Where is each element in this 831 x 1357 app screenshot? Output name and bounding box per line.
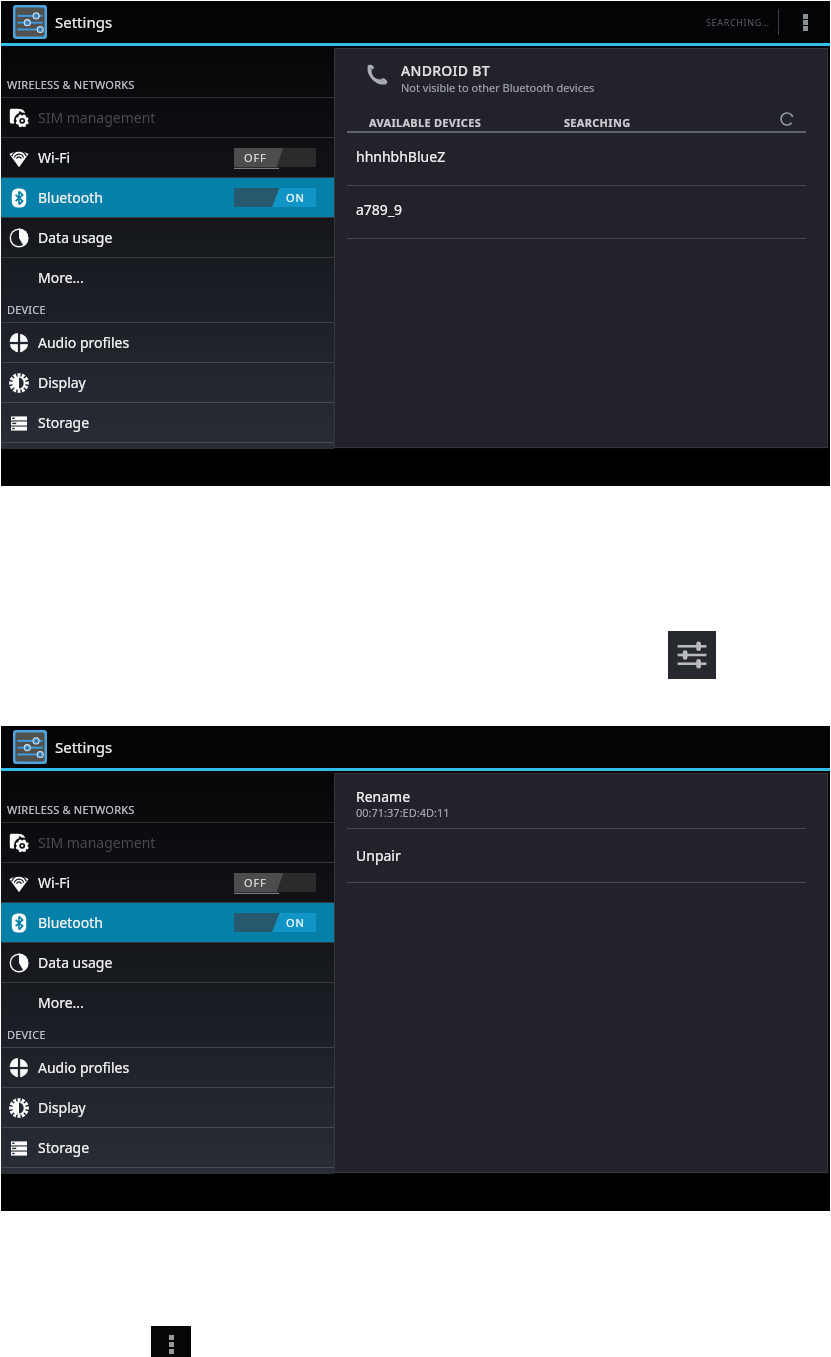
staticText: Wi-Fi — [38, 148, 71, 167]
button[interactable]: Audio profiles — [0, 323, 334, 362]
button[interactable]: Settings app icon — [13, 5, 47, 39]
button[interactable]: More options — [151, 1326, 191, 1357]
staticText: DEVICE — [7, 302, 46, 317]
button[interactable]: Settings — [668, 631, 716, 679]
staticText: Not visible to other Bluetooth devices — [401, 80, 595, 95]
staticText: SIM management — [38, 108, 156, 127]
button[interactable]: More... — [0, 258, 334, 297]
staticText: SEARCHING… — [706, 16, 770, 28]
button[interactable]: Bluetooth — [0, 178, 334, 217]
staticText: SEARCHING — [564, 115, 631, 130]
staticText: More... — [38, 993, 84, 1012]
button[interactable]: Wi-Fi — [0, 138, 334, 177]
staticText: Storage — [38, 413, 90, 432]
button[interactable]: hhnhbhBlueZ — [335, 133, 827, 185]
button[interactable]: More options — [779, 1, 831, 43]
button[interactable]: Unpair — [335, 829, 827, 883]
staticText: ON — [286, 190, 305, 205]
staticText: WIRELESS & NETWORKS — [7, 802, 135, 817]
button[interactable]: Settings app icon — [13, 730, 47, 764]
button[interactable]: Wi-Fi — [0, 863, 334, 902]
staticText: More... — [38, 268, 84, 287]
staticText: Bluetooth — [38, 188, 103, 207]
staticText: Settings — [55, 12, 113, 32]
staticText: Display — [38, 373, 86, 392]
button[interactable]: Display — [0, 1088, 334, 1127]
staticText: Rename — [356, 787, 411, 806]
staticText: OFF — [244, 150, 267, 165]
button[interactable]: SIM management — [0, 823, 334, 862]
staticText: ON — [286, 915, 305, 930]
button[interactable]: SIM management — [0, 98, 334, 137]
button[interactable]: Bluetooth — [0, 903, 334, 942]
staticText: Display — [38, 1098, 86, 1117]
button[interactable]: Storage — [0, 403, 334, 442]
button[interactable]: Display — [0, 363, 334, 402]
button[interactable]: Data usage — [0, 943, 334, 982]
staticText: Data usage — [38, 228, 113, 247]
button[interactable]: a789_9 — [335, 186, 827, 238]
staticText: SIM management — [38, 833, 156, 852]
button[interactable]: Storage — [0, 1128, 334, 1167]
staticText: Settings — [55, 737, 113, 757]
button[interactable]: Audio profiles — [0, 1048, 334, 1087]
staticText: ANDROID BT — [401, 61, 490, 80]
staticText: Bluetooth — [38, 913, 103, 932]
staticText: DEVICE — [7, 1027, 46, 1042]
staticText: AVAILABLE DEVICES — [369, 115, 482, 130]
staticText: a789_9 — [356, 200, 403, 219]
staticText: Audio profiles — [38, 333, 130, 352]
staticText: Storage — [38, 1138, 90, 1157]
staticText: OFF — [244, 875, 267, 890]
staticText: Audio profiles — [38, 1058, 130, 1077]
button[interactable]: Rename — [335, 774, 827, 828]
button[interactable]: More... — [0, 983, 334, 1022]
staticText: Unpair — [356, 846, 401, 865]
staticText: hhnhbhBlueZ — [356, 147, 446, 166]
staticText: 00:71:37:ED:4D:11 — [356, 805, 450, 820]
staticText: Data usage — [38, 953, 113, 972]
staticText: WIRELESS & NETWORKS — [7, 77, 135, 92]
staticText: Wi-Fi — [38, 873, 71, 892]
button[interactable]: Data usage — [0, 218, 334, 257]
